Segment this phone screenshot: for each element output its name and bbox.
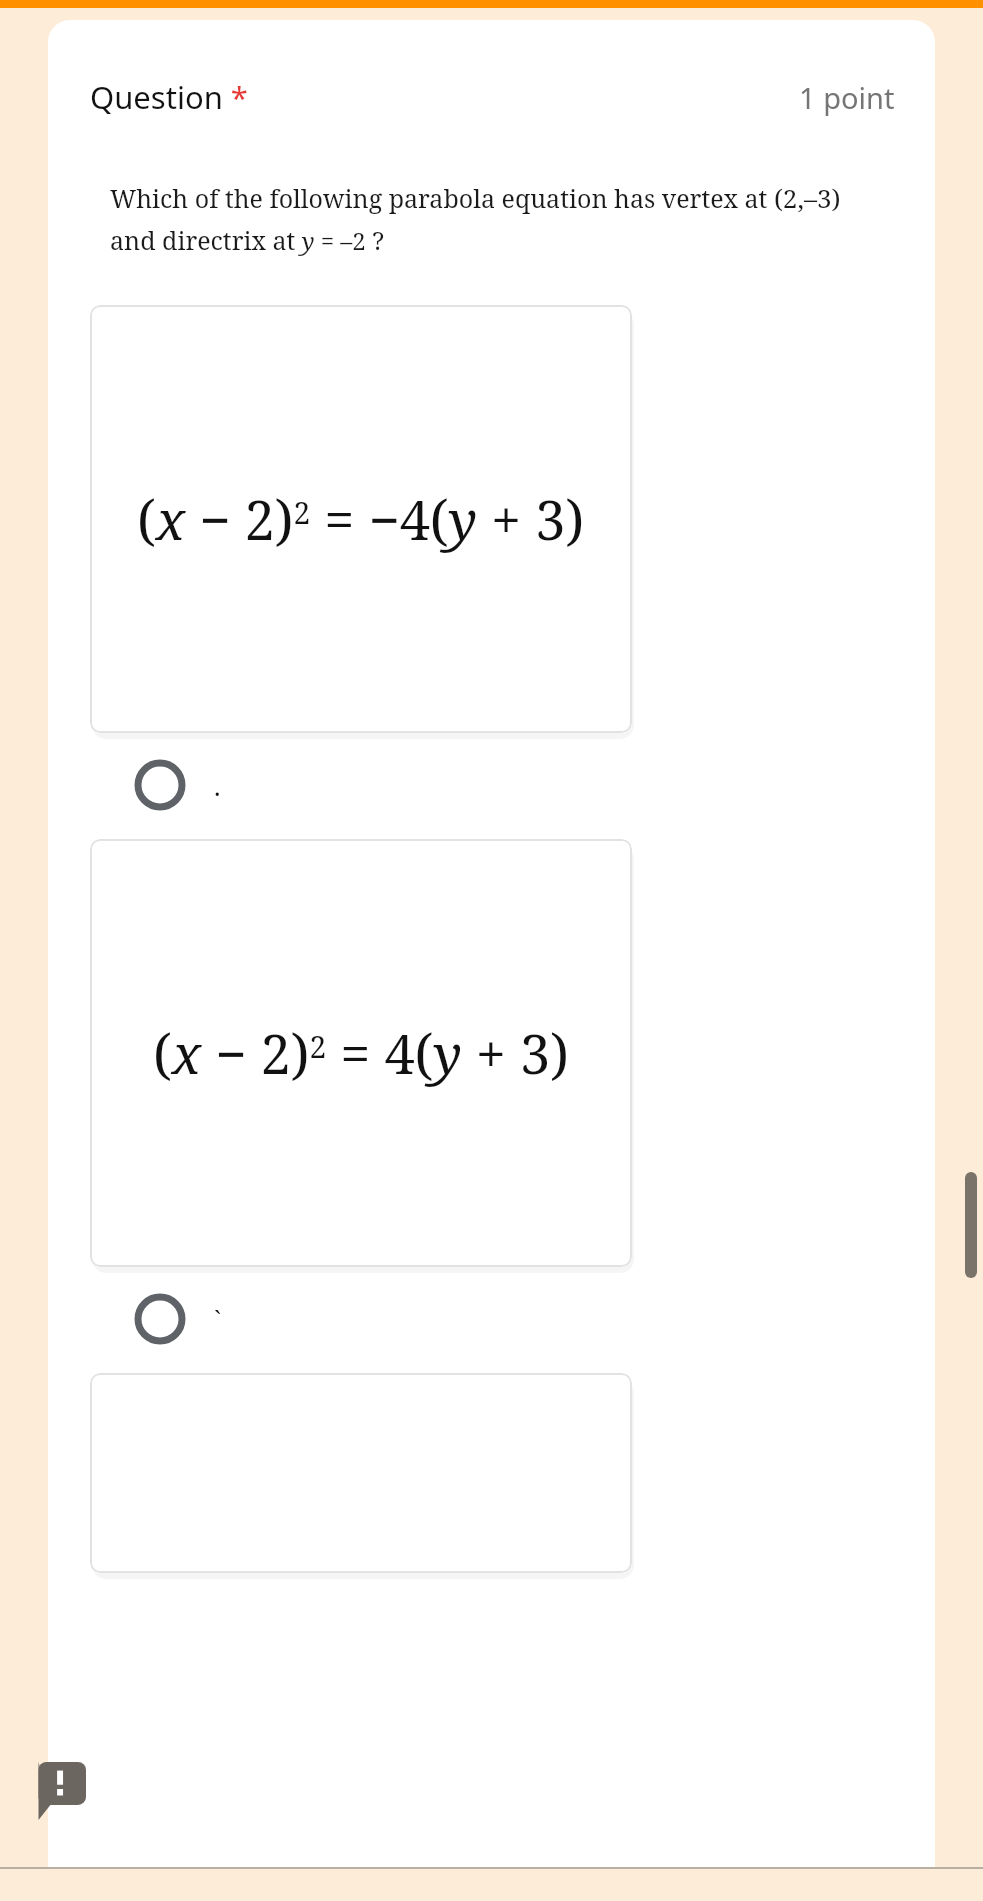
staticText: . [214, 768, 221, 803]
staticText: and directrix at y = –2 ? [110, 223, 385, 257]
button[interactable]: (x − 2)2 = −4(y + 3) [90, 305, 632, 733]
button[interactable]: Select answer [134, 1281, 314, 1357]
staticText: (x − 2)2 = 4(y + 3) [153, 1016, 569, 1090]
staticText: Question * [90, 76, 248, 118]
staticText: 1 point [799, 78, 895, 117]
staticText: Which of the following parabola equation… [110, 180, 841, 215]
button[interactable]: Report a problem [32, 1762, 86, 1820]
button[interactable]: Select answer [134, 747, 314, 823]
staticText: ` [214, 1302, 222, 1337]
staticText: (x − 2)2 = −4(y + 3) [137, 482, 585, 556]
button[interactable]: (x − 2)2 = 4(y + 3) [90, 839, 632, 1267]
button[interactable] [90, 1373, 632, 1573]
